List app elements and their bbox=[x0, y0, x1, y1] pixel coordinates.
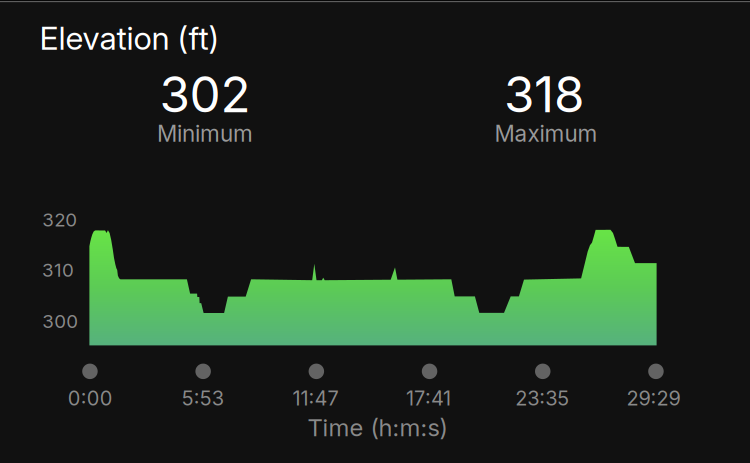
staticText: 302 bbox=[159, 64, 250, 124]
staticText: 0:00 bbox=[68, 386, 113, 410]
staticText: Elevation (ft) bbox=[39, 19, 219, 57]
staticText: 5:53 bbox=[182, 386, 224, 410]
staticText: 300 bbox=[42, 310, 78, 332]
staticText: 320 bbox=[42, 208, 77, 231]
staticText: 23:35 bbox=[515, 386, 569, 410]
staticText: 29:29 bbox=[626, 386, 680, 410]
staticText: 17:41 bbox=[406, 386, 451, 410]
staticText: Maximum bbox=[494, 120, 597, 147]
staticText: Minimum bbox=[157, 120, 253, 147]
staticText: 318 bbox=[504, 64, 585, 124]
staticText: Time (h:m:s) bbox=[307, 413, 447, 442]
staticText: 11:47 bbox=[292, 386, 338, 410]
staticText: 310 bbox=[42, 259, 74, 281]
